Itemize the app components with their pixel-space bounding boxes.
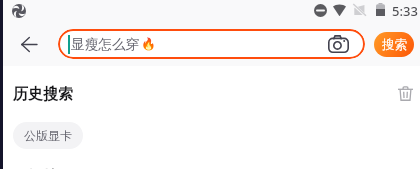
button[interactable]: 热门搜索 — [13, 168, 73, 169]
staticText: 热门搜索 — [13, 168, 73, 169]
button[interactable]: Back — [17, 33, 40, 56]
staticText: 历史搜索 — [13, 85, 73, 104]
button[interactable]: 历史搜索 — [13, 85, 73, 104]
button[interactable]: Clear search history — [396, 84, 414, 102]
staticText: 5:33 — [392, 2, 418, 20]
staticText: 搜索 — [382, 37, 407, 53]
staticText: 显瘦怎么穿 — [71, 36, 140, 53]
button[interactable]: 搜索 — [374, 32, 414, 57]
button[interactable]: 公版显卡 — [13, 122, 83, 149]
button[interactable]: Search by image — [328, 35, 349, 53]
staticText: 公版显卡 — [24, 128, 72, 143]
button[interactable]: 显瘦怎么穿 — [58, 29, 365, 59]
staticText: 🔥 — [141, 37, 156, 51]
